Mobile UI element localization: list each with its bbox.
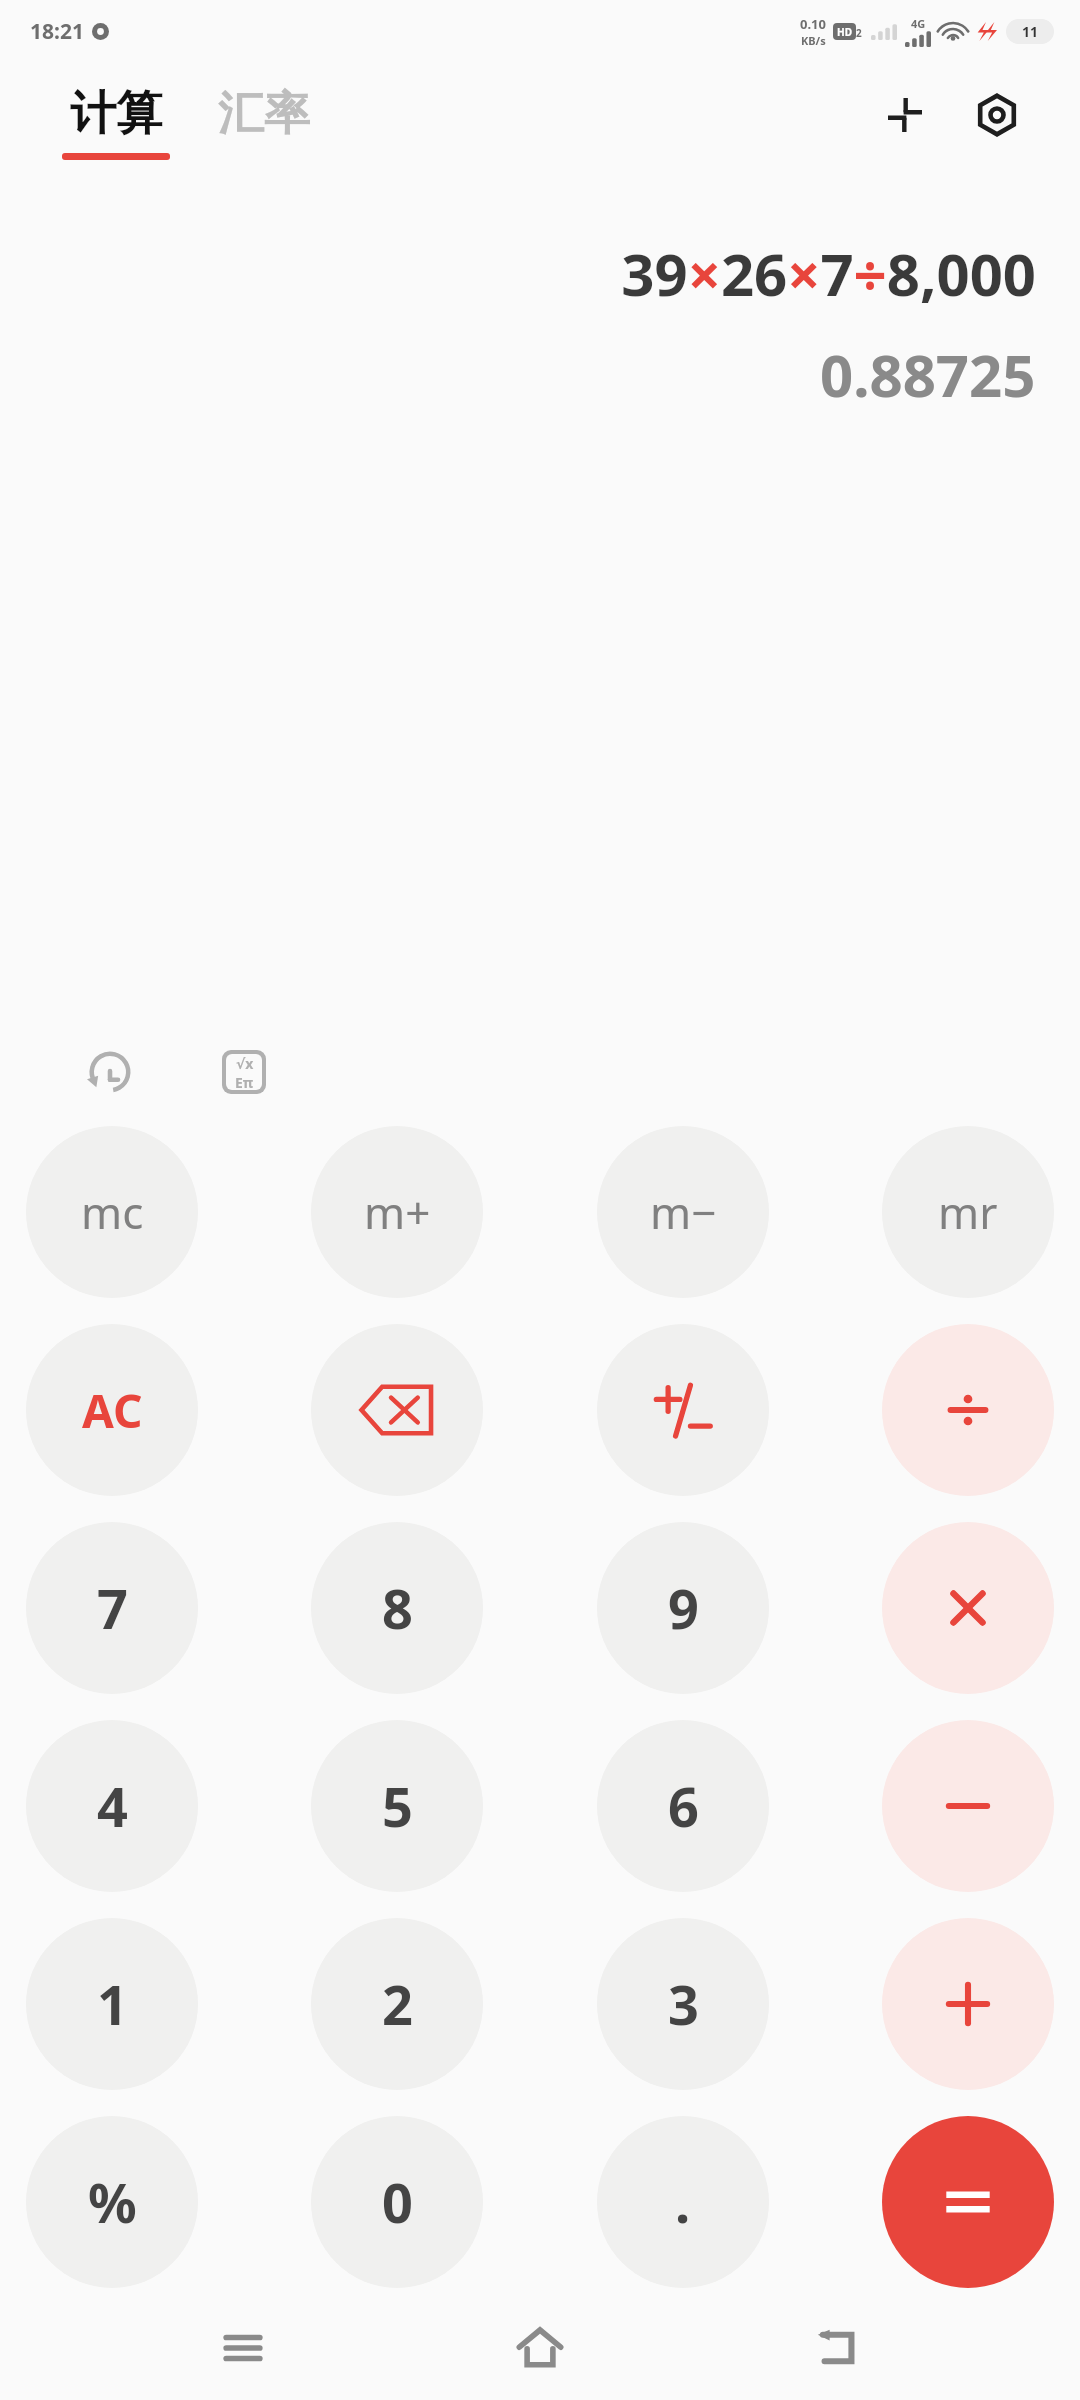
button[interactable]: Equals <box>882 2116 1054 2288</box>
button[interactable]: Home <box>485 2310 595 2386</box>
button[interactable]: mr <box>882 1126 1054 1298</box>
button[interactable]: Backspace <box>311 1324 483 1496</box>
button[interactable]: Multiply <box>882 1522 1054 1694</box>
button[interactable]: 9 <box>597 1522 769 1694</box>
button[interactable]: 3 <box>597 1918 769 2090</box>
button[interactable]: Collapse <box>868 78 942 152</box>
staticText: Eπ <box>235 1073 254 1090</box>
button[interactable]: Recents <box>188 2310 298 2386</box>
staticText: KB/s <box>801 33 826 48</box>
button[interactable]: Minus <box>882 1720 1054 1892</box>
staticText: mr <box>938 1182 998 1242</box>
staticText: 0 <box>382 2165 413 2239</box>
staticText: 2 <box>382 1967 413 2041</box>
staticText: % <box>88 2165 137 2239</box>
staticText: . <box>675 2165 691 2239</box>
staticText: 4G <box>911 16 926 31</box>
staticText: 5 <box>382 1769 413 1843</box>
button[interactable]: 2 <box>311 1918 483 2090</box>
staticText: 0.88725 <box>820 335 1036 414</box>
button[interactable]: Back <box>783 2310 893 2386</box>
staticText: 6 <box>668 1769 699 1843</box>
button[interactable]: 1 <box>26 1918 198 2090</box>
button[interactable]: 4 <box>26 1720 198 1892</box>
staticText: m+ <box>364 1182 431 1242</box>
staticText: 计算 <box>70 85 162 143</box>
button[interactable]: % <box>26 2116 198 2288</box>
button[interactable]: AC <box>26 1324 198 1496</box>
staticText: 9 <box>668 1571 699 1645</box>
staticText: mc <box>81 1182 144 1242</box>
staticText: 1 <box>97 1967 128 2041</box>
button[interactable]: Settings <box>960 78 1034 152</box>
button[interactable]: m− <box>597 1126 769 1298</box>
staticText: m− <box>650 1182 717 1242</box>
button[interactable]: 8 <box>311 1522 483 1694</box>
button[interactable]: . <box>597 2116 769 2288</box>
staticText: 3 <box>668 1967 699 2041</box>
staticText: 汇率 <box>218 85 310 143</box>
button[interactable]: History <box>72 1034 148 1110</box>
button[interactable]: Scientific <box>206 1034 282 1110</box>
staticText: √x <box>236 1054 254 1073</box>
button[interactable]: Plus <box>882 1918 1054 2090</box>
staticText: 4 <box>97 1769 128 1843</box>
button[interactable]: mc <box>26 1126 198 1298</box>
staticText: 18:21 <box>30 17 84 46</box>
staticText: 8 <box>382 1571 413 1645</box>
staticText: 0.10 <box>800 15 826 33</box>
button[interactable]: m+ <box>311 1126 483 1298</box>
button[interactable]: 0 <box>311 2116 483 2288</box>
staticText: HD <box>837 25 852 39</box>
staticText: 39×26×7÷8,000 <box>621 234 1036 313</box>
button[interactable]: Divide <box>882 1324 1054 1496</box>
button[interactable]: 6 <box>597 1720 769 1892</box>
staticText: 11 <box>1022 22 1039 41</box>
staticText: 2 <box>856 26 862 40</box>
staticText: 7 <box>97 1571 128 1645</box>
staticText: AC <box>82 1379 143 1442</box>
button[interactable]: 汇率 <box>218 85 310 160</box>
button[interactable]: 计算 <box>62 85 170 160</box>
button[interactable]: Plus minus <box>597 1324 769 1496</box>
button[interactable]: 5 <box>311 1720 483 1892</box>
button[interactable]: 7 <box>26 1522 198 1694</box>
